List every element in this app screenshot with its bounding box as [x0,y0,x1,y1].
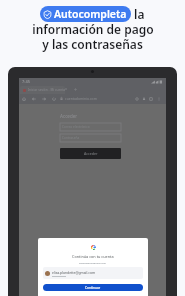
staticText: Autocompleta [54,7,127,21]
button[interactable]: Back [32,97,36,101]
button[interactable]: Dots [157,97,161,101]
other: Autofill shield [43,10,52,19]
staticText: elisa.plandette@gmail.com [52,270,96,275]
staticText: información de pago [32,21,154,37]
staticText: cuentadominio.com [65,96,97,101]
staticText: y las contraseñas [42,36,143,52]
staticText: Acceder [60,113,78,119]
staticText: Correo electrónico [62,125,90,129]
staticText: Acceder [84,151,98,156]
button[interactable]: elisa.plandette@gmail.com [43,267,143,279]
staticText: Contraseña [62,136,80,140]
staticText: Continúa con tu cuenta [72,254,114,259]
button[interactable]: Correo electrónico [60,123,121,131]
staticText: Iniciar sesión - Mi cuenta [28,88,65,92]
button[interactable]: Grid [149,97,153,101]
button[interactable]: Home [22,97,26,101]
button[interactable]: Reload [52,97,56,101]
staticText: paseldebolsagroup.com [79,261,107,264]
button[interactable]: Star [135,97,139,101]
button[interactable]: Contraseña [60,134,121,142]
button[interactable]: Profile [142,97,146,101]
button[interactable]: Iniciar sesión - Mi cuenta [20,86,65,94]
staticText: 7:45 [22,79,30,84]
staticText: la [131,6,145,22]
button[interactable]: Continuar [43,284,143,291]
staticText: Continuar [85,286,101,290]
button[interactable]: Forward [42,97,46,101]
button[interactable]: Acceder [60,148,121,159]
